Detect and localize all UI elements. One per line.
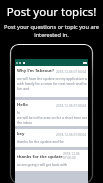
staticText: thanks for the update and for bbox=[17, 139, 65, 144]
staticText: 2018-12-06 07:00:04 bbox=[63, 152, 87, 160]
button[interactable]: Why I'm Takeout? bbox=[15, 66, 88, 97]
button[interactable]: Hello bbox=[15, 100, 88, 126]
button[interactable]: key bbox=[15, 129, 88, 147]
staticText: so am going t will get back with bbox=[17, 162, 68, 167]
staticText: Hello bbox=[17, 102, 28, 108]
staticText: hi we will be in the area on for a short… bbox=[17, 110, 87, 125]
staticText: Post your topics! bbox=[0, 4, 103, 20]
staticText: key bbox=[17, 131, 25, 137]
button[interactable]: thanks for the update bbox=[15, 150, 88, 171]
staticText: Why I'm Takeout? bbox=[17, 68, 54, 74]
staticText: 2018-12-06 07:00:04 bbox=[56, 70, 87, 74]
staticText: thanks for the update bbox=[17, 154, 63, 160]
staticText: Post your questions or topic you are int… bbox=[0, 23, 103, 38]
staticText: we will have the update on my applicatio… bbox=[17, 76, 87, 91]
staticText: 2018-12-06 07:00:04 bbox=[56, 133, 87, 137]
staticText: 2018-12-06 07:00:04 bbox=[56, 104, 87, 108]
